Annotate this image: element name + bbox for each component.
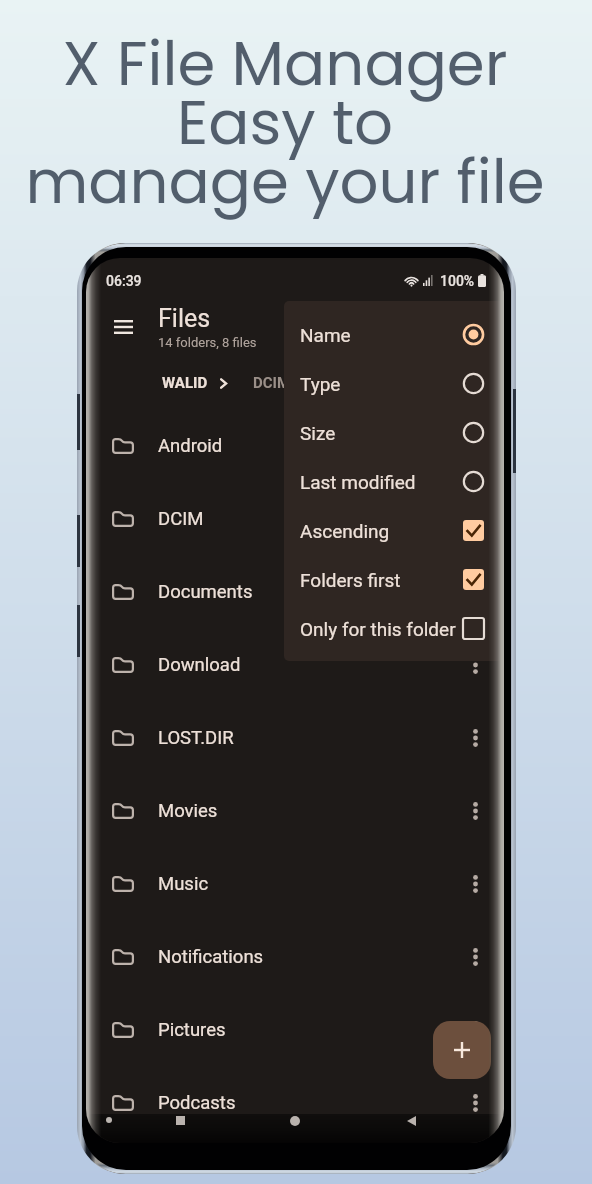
button[interactable]: Pictures: [86, 993, 504, 1066]
staticText: Pictures: [158, 1019, 226, 1041]
staticText: Podcasts: [158, 1092, 236, 1114]
staticText: Type: [300, 373, 341, 395]
button[interactable]: Folders first: [284, 555, 504, 604]
button[interactable]: Open navigation drawer: [100, 304, 146, 350]
button[interactable]: DCIM: [86, 482, 504, 555]
staticText: Download: [158, 654, 241, 676]
staticText: X File Manager Easy to manage your file: [25, 21, 545, 225]
button[interactable]: Create new: [433, 1021, 491, 1079]
button[interactable]: More options: [458, 502, 492, 536]
staticText: Ascending: [300, 520, 390, 542]
button[interactable]: Documents: [86, 555, 504, 628]
staticText: 100%: [440, 273, 475, 289]
staticText: Last modified: [300, 471, 416, 493]
button[interactable]: Last modified: [284, 457, 504, 506]
button[interactable]: More options: [458, 1013, 492, 1047]
button[interactable]: Ascending: [284, 506, 504, 555]
button[interactable]: Music: [86, 847, 504, 920]
button[interactable]: Type: [284, 359, 504, 408]
staticText: WALID: [162, 374, 208, 392]
button[interactable]: Android: [86, 409, 504, 482]
button[interactable]: Size: [284, 408, 504, 457]
button[interactable]: More options: [458, 575, 492, 609]
button[interactable]: Movies: [86, 774, 504, 847]
button[interactable]: Only for this folder: [284, 604, 504, 653]
button[interactable]: Home: [273, 1114, 317, 1140]
staticText: Android: [158, 435, 223, 457]
staticText: Files: [158, 304, 211, 333]
button[interactable]: More options: [458, 429, 492, 463]
staticText: Only for this folder: [300, 618, 456, 640]
button[interactable]: Recent apps: [158, 1114, 202, 1140]
button[interactable]: More options: [458, 648, 492, 682]
button[interactable]: WALID: [162, 370, 208, 396]
button[interactable]: Name: [284, 310, 504, 359]
button[interactable]: More options: [458, 940, 492, 974]
staticText: Size: [300, 422, 336, 444]
button[interactable]: Podcasts: [86, 1066, 504, 1139]
staticText: Notifications: [158, 946, 264, 968]
button[interactable]: LOST.DIR: [86, 701, 504, 774]
staticText: 14 folders, 8 files: [158, 335, 257, 350]
button[interactable]: Back: [389, 1114, 433, 1140]
staticText: Folders first: [300, 569, 401, 591]
button[interactable]: More options: [458, 1086, 492, 1120]
button[interactable]: More options: [458, 867, 492, 901]
staticText: Music: [158, 873, 209, 895]
staticText: DCIM: [253, 374, 291, 392]
button[interactable]: DCIM: [253, 370, 291, 396]
staticText: 06:39: [106, 273, 142, 289]
button[interactable]: More options: [458, 721, 492, 755]
staticText: Documents: [158, 581, 253, 603]
staticText: DCIM: [158, 508, 204, 530]
button[interactable]: Download: [86, 628, 504, 701]
button[interactable]: Notifications: [86, 920, 504, 993]
staticText: Movies: [158, 800, 218, 822]
staticText: LOST.DIR: [158, 727, 234, 749]
button[interactable]: More options: [458, 794, 492, 828]
staticText: Name: [300, 324, 351, 346]
